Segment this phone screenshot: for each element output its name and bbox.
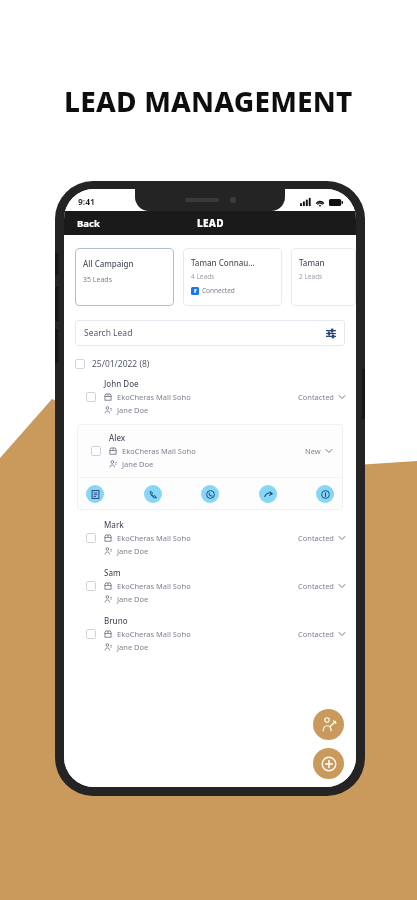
staticText: f [194, 287, 197, 295]
staticText: Contacted [298, 629, 334, 639]
button[interactable]: Taman [291, 248, 356, 306]
staticText: Taman [299, 257, 325, 268]
button[interactable]: Contacted [298, 392, 345, 402]
button[interactable]: Contacted [298, 629, 345, 639]
button[interactable]: John Doe [86, 378, 345, 415]
button[interactable]: Call [144, 485, 162, 503]
staticText: Jane Doe [122, 459, 154, 469]
button[interactable]: Mark [86, 519, 345, 556]
staticText: New [305, 446, 321, 456]
staticText: Jane Doe [117, 405, 149, 415]
staticText: EkoCheras Mall Soho [117, 392, 191, 402]
button[interactable]: Contacted [298, 581, 345, 591]
button[interactable]: All Campaign [75, 248, 174, 306]
button[interactable]: Assign lead [313, 709, 344, 740]
staticText: Bruno [104, 615, 128, 626]
staticText: 9:41 [78, 196, 95, 208]
staticText: LEAD MANAGEMENT [64, 82, 353, 120]
staticText: Alex [109, 432, 126, 443]
button[interactable]: Contacted [298, 533, 345, 543]
staticText: Jane Doe [117, 594, 149, 604]
button[interactable]: Alex [91, 432, 332, 469]
button[interactable]: 25/01/2022 (8) [75, 358, 356, 370]
staticText: Jane Doe [117, 642, 149, 652]
staticText: All Campaign [83, 258, 134, 269]
staticText: Jane Doe [117, 546, 149, 556]
staticText: Connected [202, 286, 235, 295]
staticText: LEAD [197, 216, 224, 230]
staticText: EkoCheras Mall Soho [117, 533, 191, 543]
staticText: EkoCheras Mall Soho [117, 629, 191, 639]
other: Filter [326, 328, 336, 338]
staticText: Mark [104, 519, 124, 530]
staticText: 35 Leads [83, 275, 113, 285]
staticText: Contacted [298, 533, 334, 543]
staticText: 25/01/2022 (8) [92, 358, 150, 370]
staticText: EkoCheras Mall Soho [122, 446, 196, 456]
staticText: Sam [104, 567, 121, 578]
button[interactable]: Add lead [313, 748, 344, 779]
button[interactable]: New [305, 446, 332, 456]
button[interactable]: Back [77, 217, 100, 230]
button[interactable]: Search Lead [75, 320, 345, 346]
button[interactable]: Sam [86, 567, 345, 604]
staticText: Contacted [298, 392, 334, 402]
button[interactable]: Info [316, 485, 334, 503]
button[interactable]: Note [86, 485, 104, 503]
button[interactable]: WhatsApp [201, 485, 219, 503]
staticText: Contacted [298, 581, 334, 591]
button[interactable]: Taman Connau... [183, 248, 282, 306]
staticText: 2 Leads [299, 272, 323, 281]
staticText: 4 Leads [191, 272, 215, 281]
staticText: Search Lead [84, 327, 133, 339]
staticText: John Doe [104, 378, 139, 389]
staticText: Taman Connau... [191, 257, 255, 268]
button[interactable]: Forward [259, 485, 277, 503]
staticText: EkoCheras Mall Soho [117, 581, 191, 591]
button[interactable]: Bruno [86, 615, 345, 652]
